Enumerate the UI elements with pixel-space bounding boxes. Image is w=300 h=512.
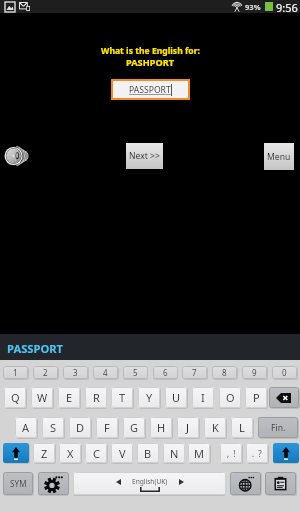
button[interactable]: 5: [123, 366, 148, 379]
button[interactable]: K: [204, 417, 226, 438]
button[interactable]: PASSPORT: [113, 81, 188, 98]
button[interactable]: L: [231, 417, 253, 438]
staticText: PASHPORT: [126, 56, 174, 69]
staticText: Menu: [267, 151, 291, 163]
button[interactable]: J: [177, 417, 199, 438]
button[interactable]: C: [85, 443, 107, 463]
staticText: 4: [103, 367, 108, 378]
button[interactable]: X: [59, 443, 81, 463]
staticText: PASSPORT: [129, 84, 171, 96]
staticText: . ?: [252, 448, 262, 459]
staticText: Fin.: [271, 422, 286, 434]
button[interactable]: H: [150, 417, 172, 438]
button[interactable]: 6: [153, 366, 178, 379]
staticText: 5: [133, 367, 138, 378]
staticText: O: [226, 390, 235, 405]
button[interactable]: 0: [272, 366, 297, 379]
staticText: I: [201, 390, 205, 405]
staticText: N: [170, 446, 179, 461]
button[interactable]: Q: [4, 387, 26, 408]
button[interactable]: SYM: [3, 472, 33, 495]
staticText: J: [186, 420, 190, 435]
staticText: L: [239, 420, 245, 435]
button[interactable]: 8: [212, 366, 237, 379]
staticText: E: [66, 390, 73, 405]
button[interactable]: Play pronunciation: [4, 144, 28, 168]
button[interactable]: 1: [3, 366, 28, 379]
button[interactable]: P: [245, 387, 267, 408]
button[interactable]: Y: [138, 387, 160, 408]
staticText: G: [130, 420, 139, 435]
staticText: 6: [163, 367, 168, 378]
button[interactable]: T: [111, 387, 133, 408]
button[interactable]: Clipboard: [265, 472, 296, 495]
button[interactable]: Shift: [3, 443, 29, 463]
button[interactable]: PASSPORT: [7, 341, 64, 356]
staticText: Q: [11, 390, 20, 405]
button[interactable]: 2: [33, 366, 58, 379]
staticText: P: [253, 390, 260, 405]
button[interactable]: D: [69, 417, 91, 438]
staticText: 2: [43, 367, 48, 378]
button[interactable]: S: [42, 417, 64, 438]
staticText: M: [194, 446, 204, 461]
staticText: 8: [222, 367, 227, 378]
staticText: A: [22, 420, 30, 435]
button[interactable]: Next >>: [126, 143, 163, 169]
button[interactable]: A: [15, 417, 37, 438]
staticText: D: [76, 420, 85, 435]
staticText: 9: [252, 367, 257, 378]
button[interactable]: R: [85, 387, 107, 408]
staticText: S: [50, 420, 57, 435]
button[interactable]: W: [31, 387, 53, 408]
button[interactable]: M: [188, 443, 210, 463]
staticText: V: [119, 446, 126, 461]
staticText: T: [119, 390, 126, 405]
button[interactable]: F: [96, 417, 118, 438]
staticText: Next >>: [129, 150, 160, 162]
staticText: English(UK): [132, 477, 168, 486]
staticText: 93%: [245, 2, 261, 12]
staticText: 1: [13, 367, 18, 378]
staticText: C: [93, 446, 100, 461]
staticText: 3: [73, 367, 78, 378]
staticText: B: [144, 446, 152, 461]
button[interactable]: G: [123, 417, 145, 438]
staticText: SYM: [10, 478, 27, 489]
staticText: 9:56: [276, 0, 298, 13]
staticText: W: [37, 390, 48, 405]
staticText: PASSPORT: [7, 341, 64, 356]
staticText: 7: [192, 367, 197, 378]
button[interactable]: O: [219, 387, 241, 408]
button[interactable]: Shift: [273, 443, 299, 463]
staticText: X: [67, 446, 74, 461]
button[interactable]: V: [111, 443, 133, 463]
button[interactable]: B: [137, 443, 159, 463]
staticText: F: [104, 420, 110, 435]
button[interactable]: . ?: [246, 443, 268, 463]
button[interactable]: U: [165, 387, 187, 408]
staticText: R: [93, 390, 100, 405]
button[interactable]: Fin.: [258, 417, 298, 438]
button[interactable]: Z: [33, 443, 55, 463]
button[interactable]: Keyboard settings: [38, 472, 69, 495]
button[interactable]: N: [163, 443, 185, 463]
button[interactable]: 3: [63, 366, 88, 379]
button[interactable]: 7: [182, 366, 207, 379]
staticText: Z: [41, 446, 48, 461]
button[interactable]: , !: [220, 443, 242, 463]
staticText: K: [212, 420, 219, 435]
staticText: What is the English for:: [101, 45, 200, 57]
staticText: 0: [282, 367, 287, 378]
button[interactable]: Backspace: [269, 387, 299, 408]
staticText: Y: [146, 390, 153, 405]
staticText: H: [157, 420, 166, 435]
button[interactable]: 4: [93, 366, 118, 379]
staticText: U: [172, 390, 181, 405]
button[interactable]: 9: [242, 366, 267, 379]
button[interactable]: E: [58, 387, 80, 408]
button[interactable]: Menu: [264, 143, 294, 170]
button[interactable]: Space: [73, 472, 226, 495]
button[interactable]: Switch language: [230, 472, 261, 495]
button[interactable]: I: [192, 387, 214, 408]
